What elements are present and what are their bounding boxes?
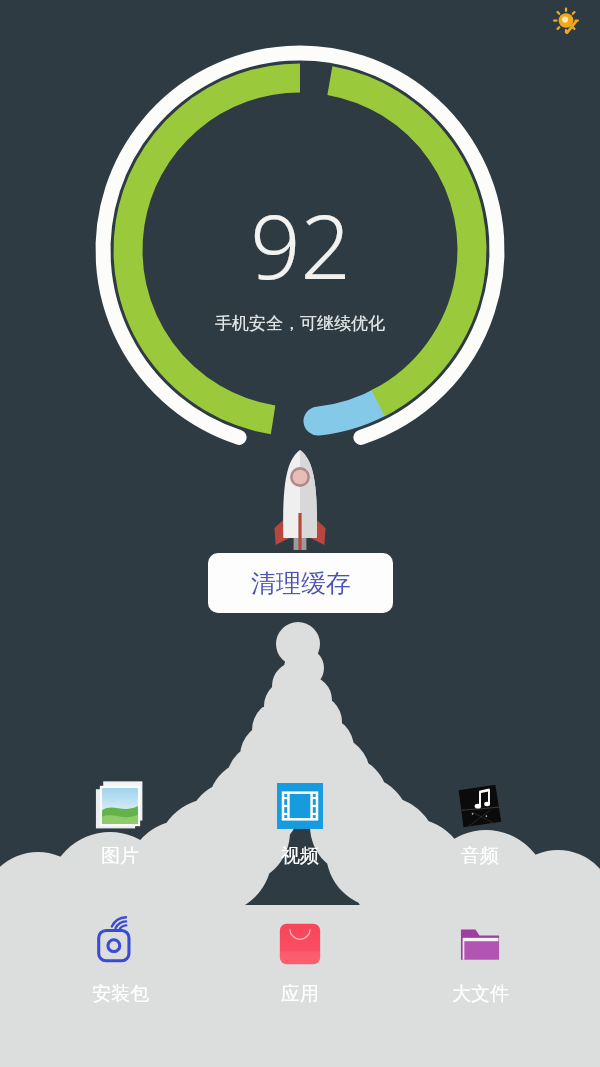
staticText: 视频	[281, 844, 319, 868]
staticText: 安装包	[92, 982, 149, 1006]
button[interactable]: 清理缓存	[208, 553, 393, 613]
staticText: 音频	[461, 844, 499, 868]
staticText: 图片	[101, 844, 139, 868]
button[interactable]: Tips	[546, 2, 586, 42]
button[interactable]: 图片	[60, 778, 180, 868]
button[interactable]: 安装包	[60, 916, 180, 1006]
staticText: 92	[250, 185, 351, 305]
staticText: 大文件	[452, 982, 509, 1006]
button[interactable]: 视频	[240, 778, 360, 868]
button[interactable]: 大文件	[420, 916, 540, 1006]
button[interactable]: 应用	[240, 916, 360, 1006]
staticText: 应用	[281, 982, 319, 1006]
button[interactable]: 音频	[420, 778, 540, 868]
staticText: 手机安全，可继续优化	[215, 313, 385, 334]
staticText: 清理缓存	[251, 568, 351, 599]
